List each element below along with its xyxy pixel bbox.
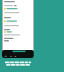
button[interactable] xyxy=(2,50,34,58)
